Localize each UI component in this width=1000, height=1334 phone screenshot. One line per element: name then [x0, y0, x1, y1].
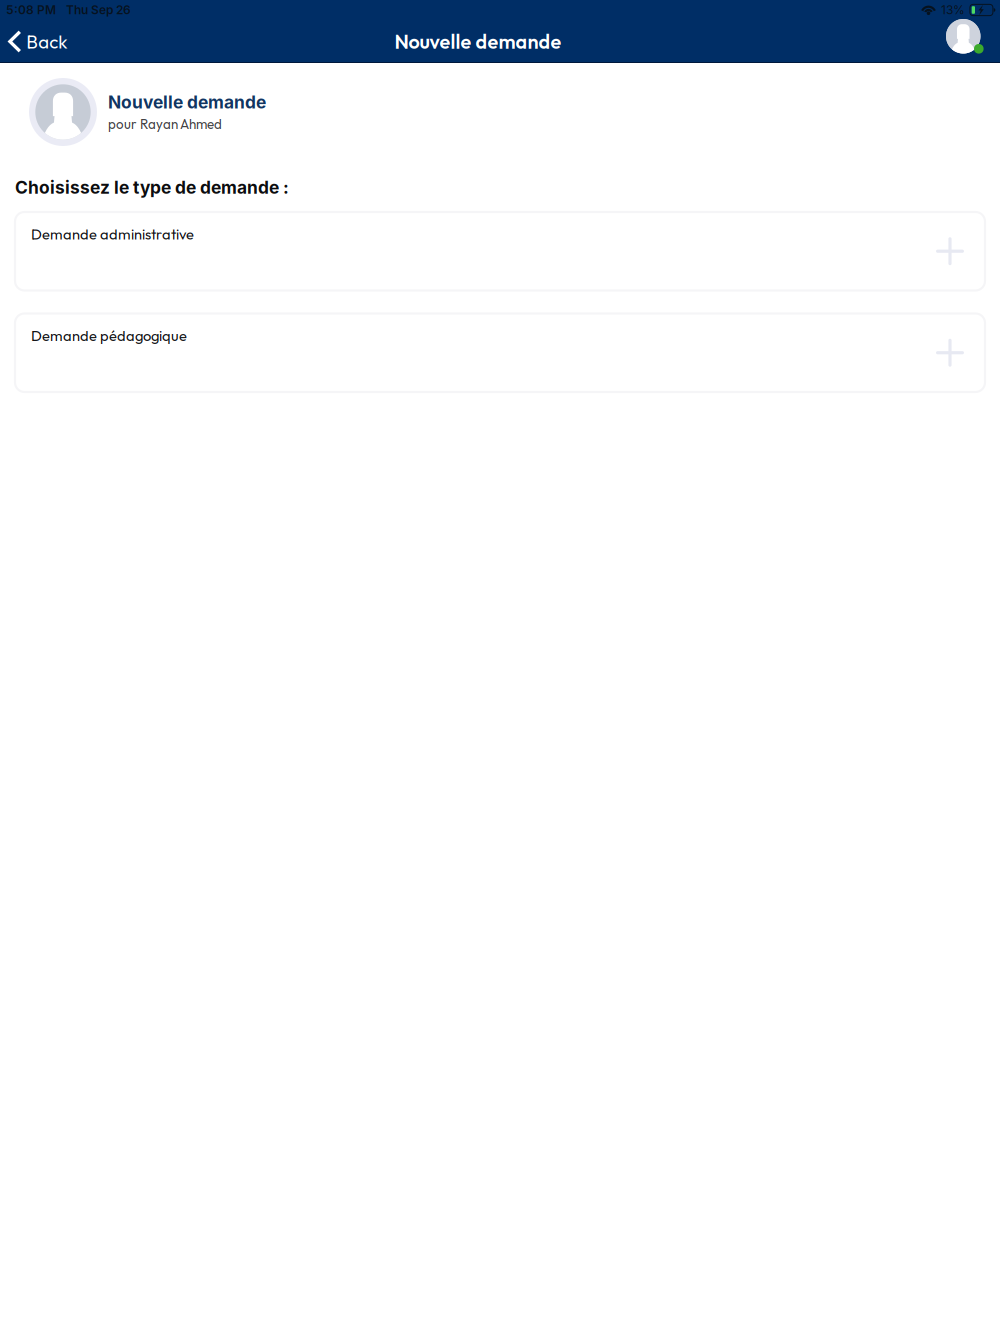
- staticText: Demande administrative: [31, 225, 194, 243]
- staticText: 5:08 PM: [6, 3, 56, 17]
- staticText: 13%: [941, 3, 965, 17]
- staticText: Back: [26, 30, 67, 53]
- staticText: Nouvelle demande: [394, 29, 561, 54]
- button[interactable]: Back: [0, 20, 77, 63]
- button[interactable]: Profile: [946, 19, 1000, 64]
- staticText: pour Rayan Ahmed: [108, 116, 222, 132]
- button[interactable]: Demande administrative: [15, 212, 985, 290]
- staticText: Thu Sep 26: [66, 3, 131, 17]
- staticText: Nouvelle demande: [108, 92, 266, 113]
- staticText: Demande pédagogique: [31, 326, 187, 345]
- button[interactable]: Demande pédagogique: [15, 313, 985, 392]
- staticText: Choisissez le type de demande :: [15, 177, 289, 198]
